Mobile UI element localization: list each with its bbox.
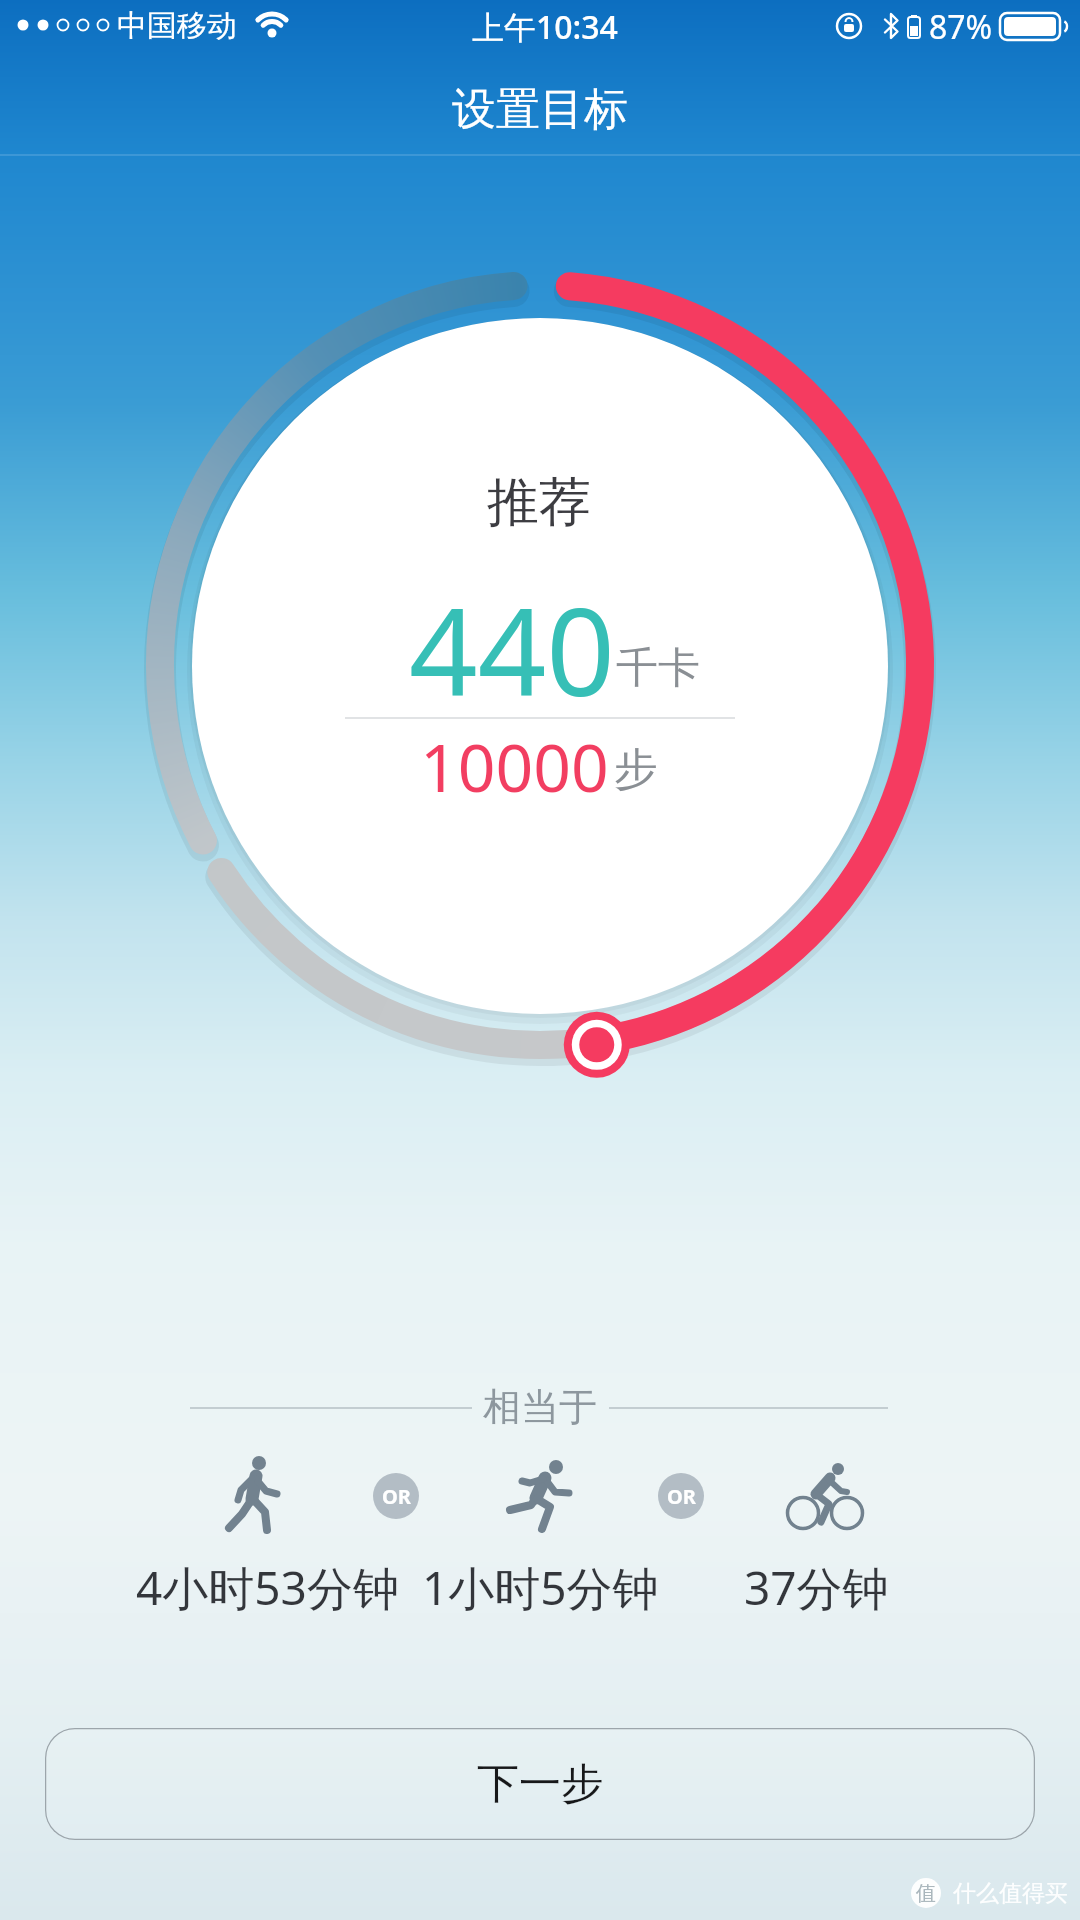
staticText: 什么值得买 xyxy=(953,1879,1068,1908)
staticText: 相当于 xyxy=(483,1383,597,1431)
staticText: OR xyxy=(382,1483,411,1510)
staticText: 设置目标 xyxy=(452,82,628,137)
staticText: 10000 xyxy=(420,721,609,811)
staticText: 千卡 xyxy=(616,642,700,695)
staticText: 上午10:34 xyxy=(472,5,618,49)
staticText: 4小时53分钟 xyxy=(136,1556,399,1619)
button[interactable]: 下一步 xyxy=(45,1728,1035,1840)
staticText: 1小时5分钟 xyxy=(422,1556,659,1619)
staticText: 中国移动 xyxy=(117,7,237,45)
staticText: 下一步 xyxy=(477,1758,603,1811)
staticText: 440 xyxy=(409,568,615,731)
staticText: OR xyxy=(667,1483,696,1510)
staticText: 步 xyxy=(614,742,658,797)
staticText: 37分钟 xyxy=(744,1556,889,1619)
staticText: 值 xyxy=(916,1881,936,1906)
staticText: 推荐 xyxy=(487,470,591,536)
staticText: 87% xyxy=(929,5,993,49)
